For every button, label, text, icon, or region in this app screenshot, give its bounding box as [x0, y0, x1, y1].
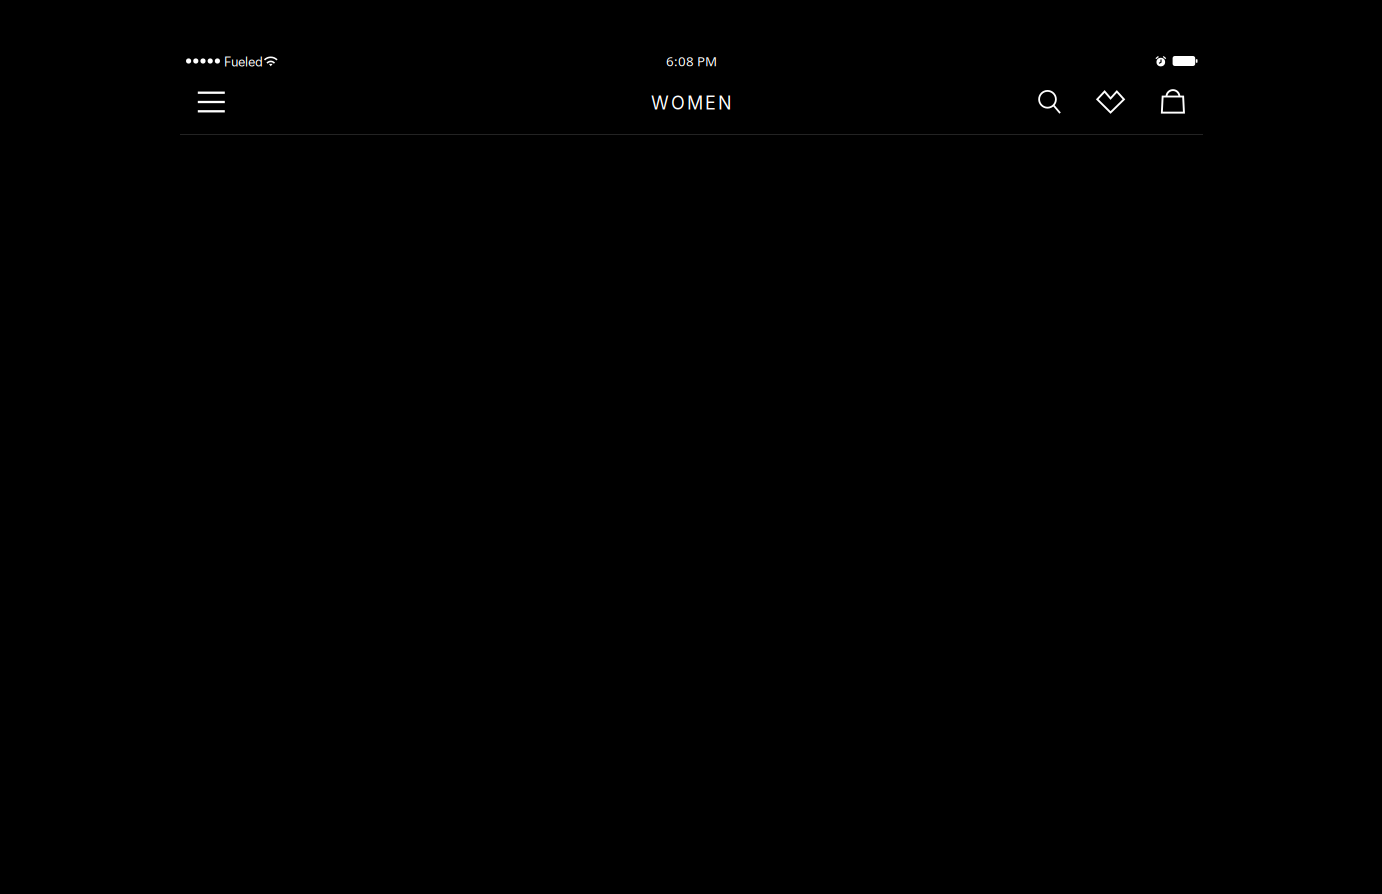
- button[interactable]: Shopping bag: [1150, 78, 1196, 134]
- staticText: 6:08 PM: [666, 52, 717, 70]
- button[interactable]: Menu: [185, 78, 237, 134]
- staticText: Fueled: [224, 54, 263, 69]
- button[interactable]: Search: [1028, 78, 1072, 134]
- button[interactable]: Wishlist: [1089, 78, 1133, 134]
- staticText: W O M E N: [651, 92, 732, 114]
